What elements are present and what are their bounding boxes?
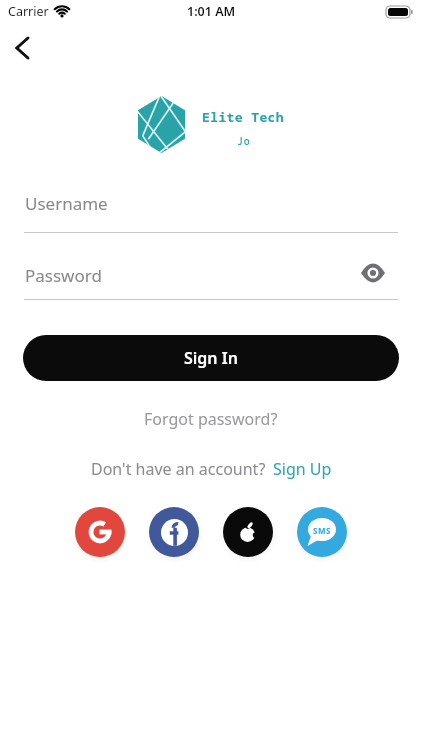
staticText: Username: [25, 192, 108, 215]
button[interactable]: [223, 507, 273, 557]
button[interactable]: SMS: [297, 507, 347, 557]
staticText: Carrier: [8, 3, 49, 20]
button[interactable]: [3, 29, 41, 67]
button[interactable]: [361, 264, 385, 282]
staticText: 1:01 AM: [187, 3, 236, 20]
staticText: Sign In: [184, 347, 238, 369]
staticText: Elite Tech: [202, 108, 285, 126]
button[interactable]: Sign In: [23, 335, 399, 381]
staticText: SMS: [313, 525, 331, 536]
staticText: Don't have an account?: [91, 458, 266, 480]
button[interactable]: Forgot password?: [144, 408, 278, 430]
staticText: Password: [25, 264, 102, 287]
button[interactable]: Sign Up: [273, 458, 332, 480]
button[interactable]: [75, 507, 125, 557]
staticText: Jo: [237, 134, 251, 148]
button[interactable]: [149, 507, 199, 557]
